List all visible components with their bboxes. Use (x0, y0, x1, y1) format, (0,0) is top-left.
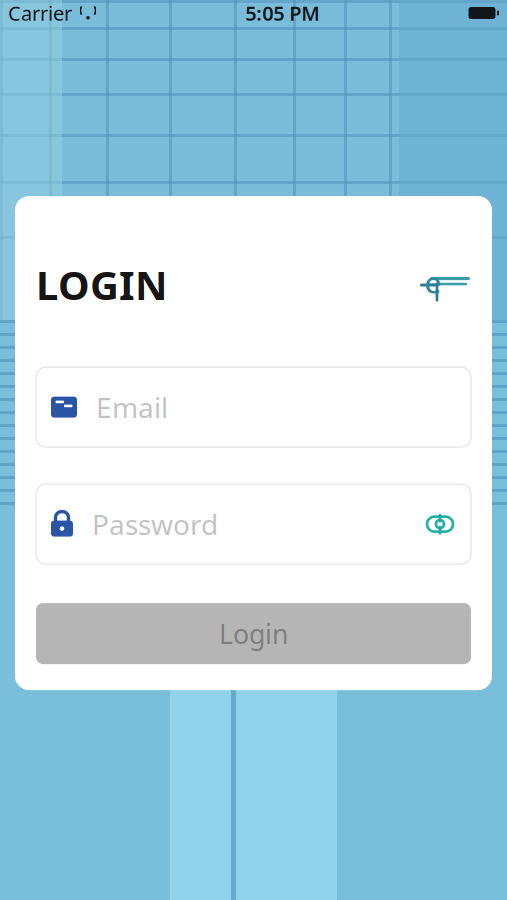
button[interactable]: Show password (425, 511, 455, 537)
staticText: Password (92, 505, 218, 543)
staticText: 5:05 PM (245, 0, 320, 26)
staticText: LOGIN (36, 258, 168, 311)
button[interactable]: Login (36, 603, 471, 664)
staticText: e (424, 263, 441, 302)
staticText: Login (219, 616, 288, 651)
staticText: Carrier (8, 0, 72, 26)
button[interactable]: Email (36, 367, 471, 447)
staticText: Email (96, 388, 168, 426)
